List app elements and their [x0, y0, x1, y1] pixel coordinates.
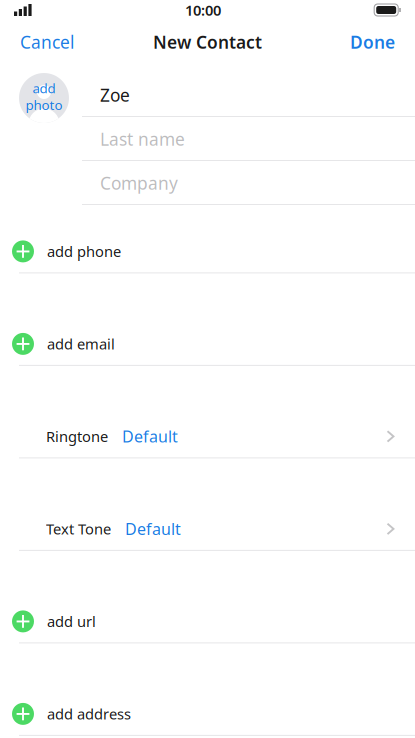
staticText: Default [122, 426, 178, 447]
staticText: New Contact [153, 30, 262, 53]
staticText: add phone [47, 242, 121, 261]
button[interactable]: Done [338, 20, 415, 64]
button[interactable]: add phone [0, 229, 415, 273]
button[interactable]: Text Tone [0, 507, 415, 551]
staticText: Ringtone [46, 427, 108, 446]
button[interactable]: add url [0, 599, 415, 643]
button[interactable]: add address [0, 692, 415, 736]
staticText: Text Tone [46, 519, 111, 539]
staticText: add address [47, 704, 131, 724]
staticText: Last name [100, 127, 185, 150]
staticText: add [32, 79, 55, 97]
staticText: Cancel [20, 30, 74, 53]
staticText: Done [350, 30, 395, 53]
staticText: 10:00 [185, 0, 221, 20]
button[interactable]: add email [0, 322, 415, 366]
button[interactable]: Ringtone [0, 414, 415, 458]
staticText: add url [47, 612, 96, 631]
staticText: Company [100, 171, 178, 194]
button[interactable]: Add photo [19, 73, 69, 123]
staticText: photo [25, 96, 62, 114]
staticText: Zoe [100, 83, 130, 106]
staticText: Default [125, 518, 181, 539]
button[interactable]: Cancel [0, 20, 86, 64]
staticText: add email [47, 334, 115, 354]
